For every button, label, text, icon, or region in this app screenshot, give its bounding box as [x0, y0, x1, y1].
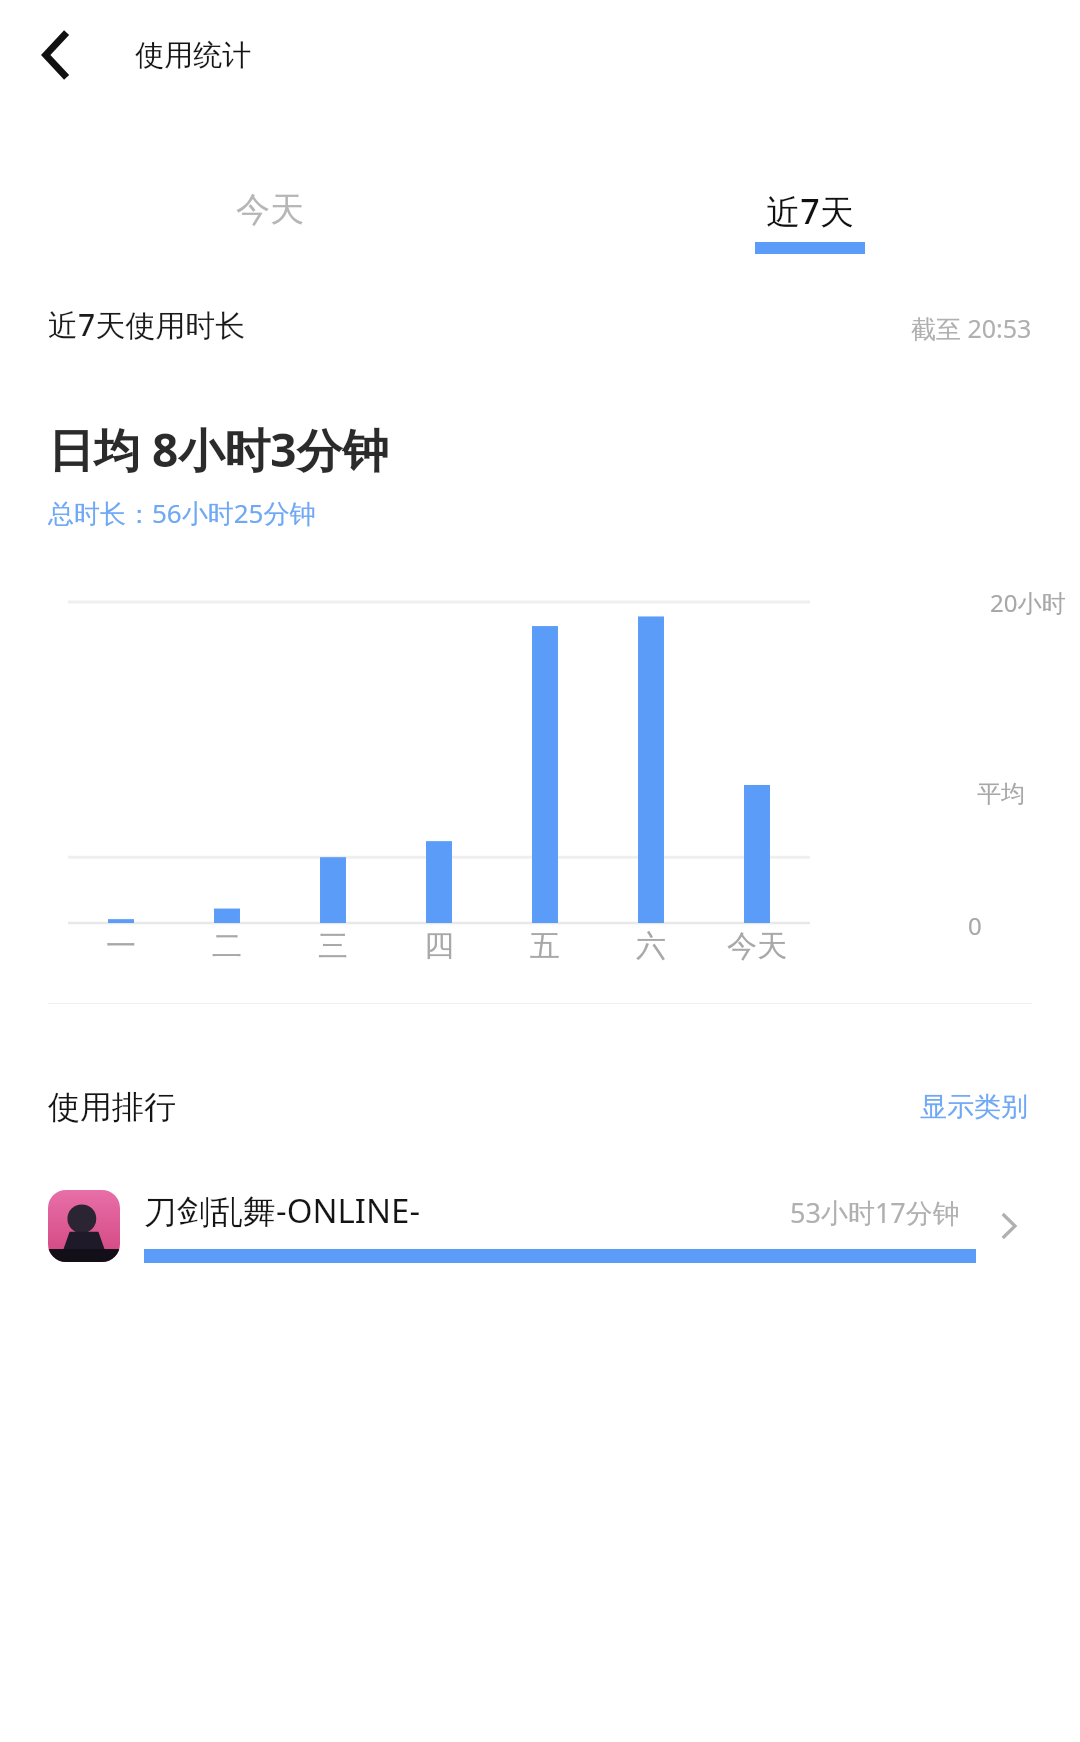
staticText: 使用排行	[48, 1087, 176, 1127]
staticText: 日均 8小时3分钟	[48, 418, 389, 481]
staticText: 20小时	[990, 586, 1066, 619]
staticText: 五	[530, 927, 560, 965]
button[interactable]: 刀剑乱舞-ONLINE-	[0, 1188, 1080, 1263]
staticText: 截至 20:53	[911, 311, 1032, 345]
staticText: 显示类别	[920, 1090, 1028, 1124]
button[interactable]: 今天	[0, 188, 540, 251]
staticText: 今天	[236, 188, 304, 231]
staticText: 二	[212, 927, 242, 965]
staticText: 六	[636, 927, 666, 965]
staticText: 刀剑乱舞-ONLINE-	[144, 1188, 421, 1233]
staticText: 三	[318, 927, 348, 965]
button[interactable]: 近7天	[540, 188, 1080, 254]
staticText: 近7天使用时长	[48, 304, 246, 345]
staticText: 使用统计	[135, 37, 251, 74]
button[interactable]: Back	[22, 22, 88, 88]
button[interactable]: 显示类别	[916, 1086, 1032, 1128]
staticText: 一	[106, 927, 136, 965]
staticText: 平均	[977, 779, 1025, 809]
other: Open details	[984, 1202, 1032, 1250]
staticText: 近7天	[766, 188, 854, 234]
staticText: 四	[424, 927, 454, 965]
staticText: 0	[968, 909, 982, 942]
staticText: 总时长：56小时25分钟	[48, 495, 316, 531]
staticText: 53小时17分钟	[790, 1194, 960, 1231]
staticText: 今天	[727, 927, 787, 965]
